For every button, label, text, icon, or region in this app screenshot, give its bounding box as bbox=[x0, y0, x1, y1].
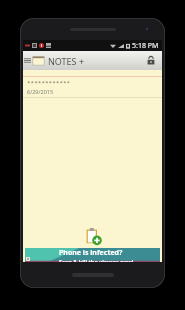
staticText: 6/29/2015 bbox=[27, 88, 54, 95]
button[interactable]: Menu bbox=[24, 57, 31, 64]
staticText: ************ bbox=[27, 79, 71, 87]
staticText: 5:18 PM bbox=[132, 41, 159, 51]
button[interactable]: Add note bbox=[83, 226, 103, 246]
staticText: NOTES + bbox=[48, 55, 85, 67]
button[interactable]: ************ bbox=[23, 77, 162, 97]
button[interactable]: Phone is infected? bbox=[25, 248, 160, 262]
staticText: Phone is infected? bbox=[59, 248, 123, 258]
button[interactable]: Lock bbox=[141, 51, 160, 70]
button[interactable]: Menu bbox=[23, 51, 162, 70]
staticText: Scan & kill the viruses now! bbox=[59, 258, 134, 262]
